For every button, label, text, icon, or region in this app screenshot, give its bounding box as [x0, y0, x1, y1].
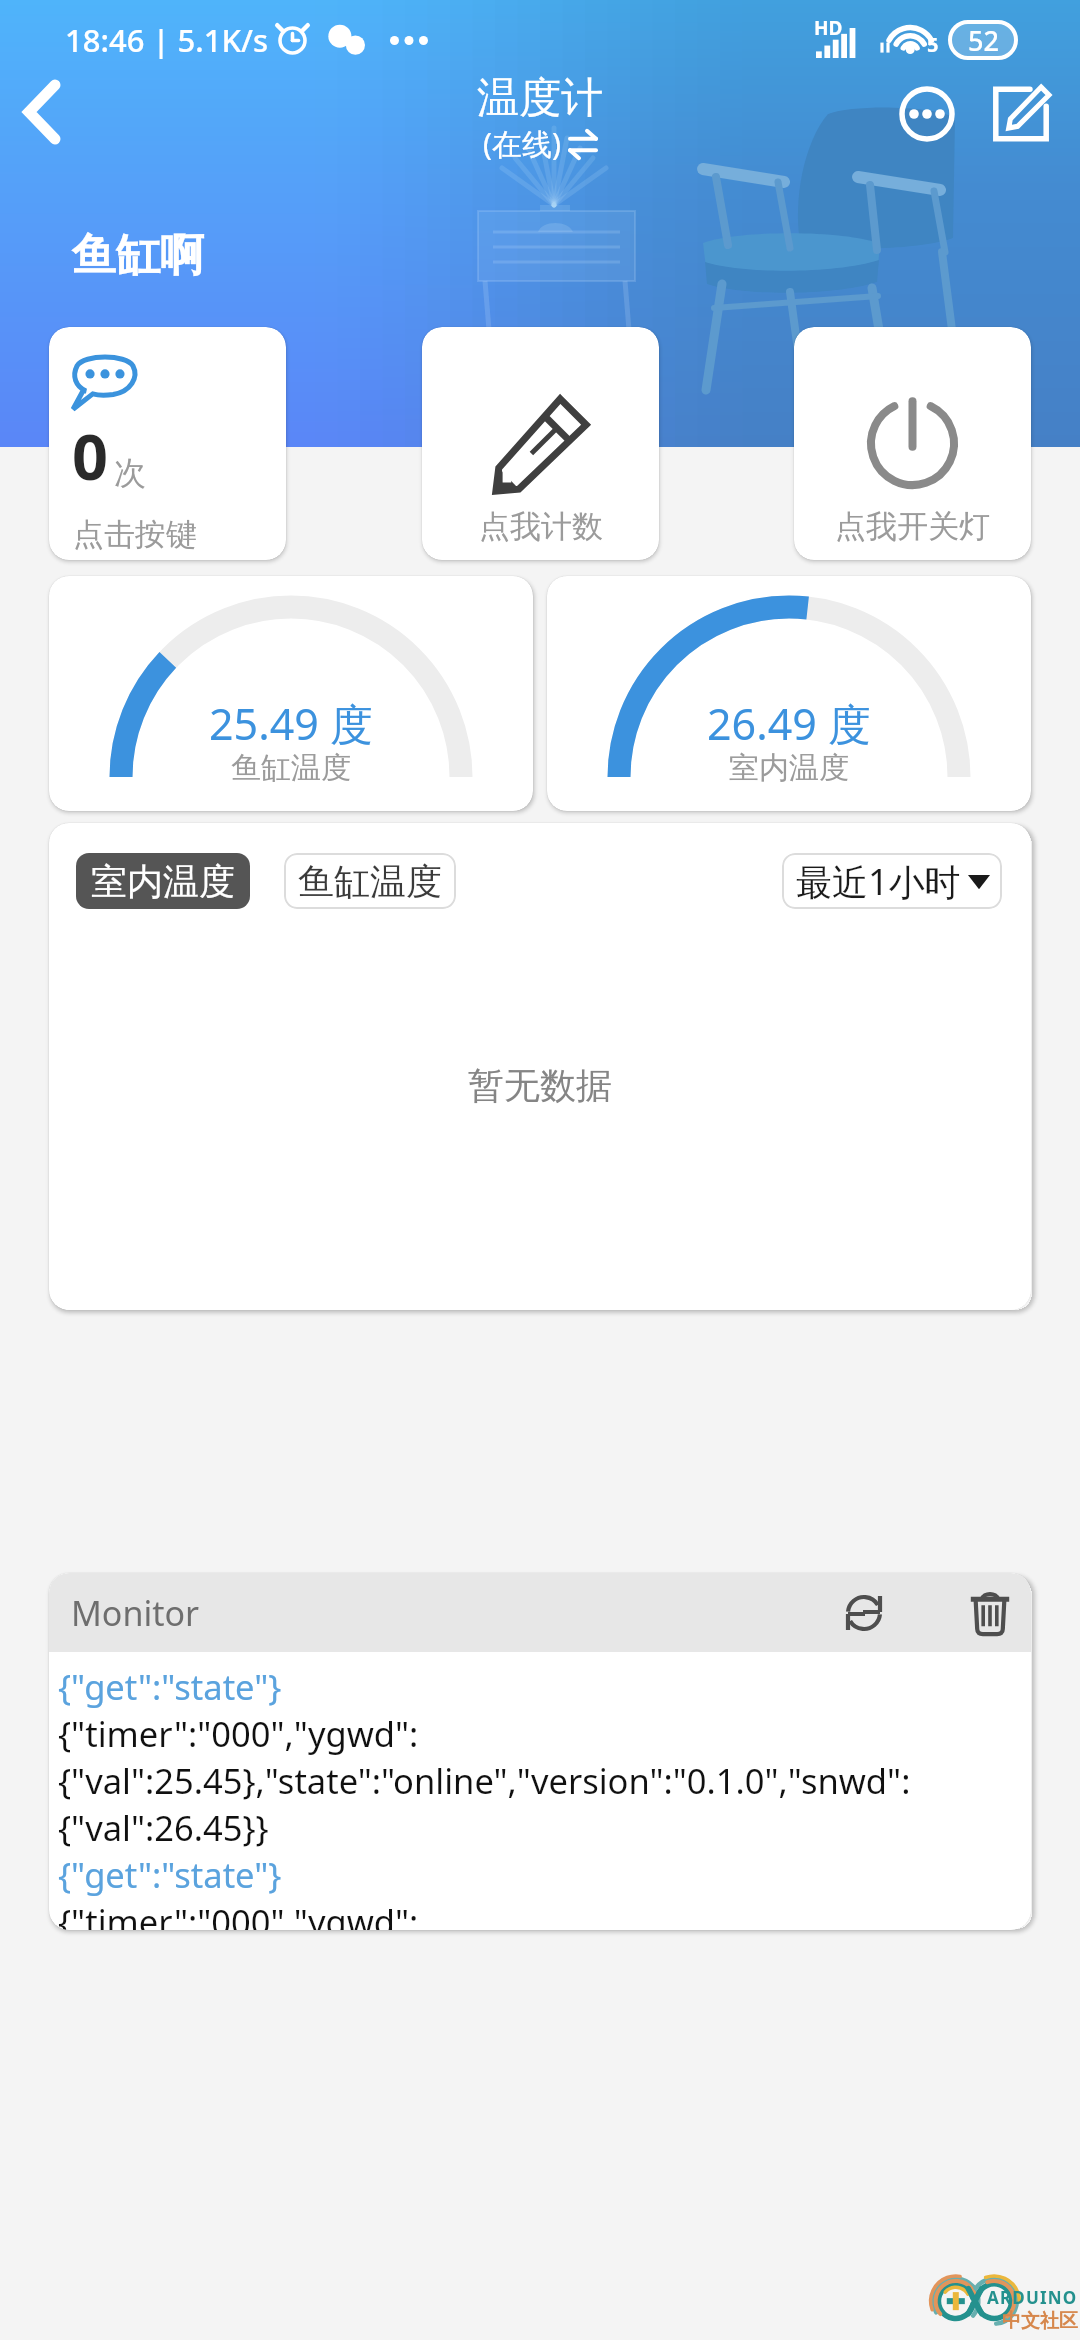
button[interactable]: 最近1小时 — [782, 853, 1002, 909]
button[interactable]: More options — [880, 67, 974, 161]
button[interactable]: Clear — [957, 1580, 1023, 1646]
staticText: HD — [814, 15, 843, 41]
staticText: 52 — [968, 22, 999, 58]
staticText: 鱼缸啊 — [72, 228, 204, 283]
staticText: 鱼缸温度 — [298, 859, 442, 904]
staticText: Monitor — [71, 1590, 200, 1636]
staticText: {"get":"state"} — [58, 1663, 282, 1710]
staticText: 室内温度 — [729, 749, 849, 787]
staticText: 暂无数据 — [468, 1063, 612, 1108]
button[interactable]: 26.49 度 — [547, 576, 1031, 811]
button[interactable]: Back — [0, 64, 90, 160]
staticText: {"val":26.45}} — [58, 1804, 269, 1851]
button[interactable]: Edit — [974, 67, 1068, 161]
staticText: 点我计数 — [479, 507, 603, 546]
button[interactable]: 室内温度 — [76, 853, 250, 909]
staticText: {"timer":"000","ygwd": — [58, 1710, 419, 1757]
staticText: 18:46 | 5.1K/s — [65, 19, 269, 61]
staticText: {"val":25.45},"state":"online","version"… — [58, 1757, 911, 1804]
button[interactable]: 0 — [49, 327, 286, 560]
staticText: 次 — [114, 453, 146, 493]
button[interactable]: Refresh — [831, 1580, 897, 1646]
staticText: {"timer":"000","ygwd": — [58, 1898, 419, 1930]
staticText: 点击按键 — [73, 515, 197, 554]
staticText: 中文社区 — [1002, 2309, 1078, 2333]
staticText: 5 — [927, 31, 939, 58]
staticText: 点我开关灯 — [835, 507, 990, 546]
staticText: 25.49 度 — [209, 694, 374, 753]
staticText: 0 — [72, 413, 109, 499]
staticText: (在线) — [483, 123, 561, 164]
button[interactable]: 点我开关灯 — [794, 327, 1031, 560]
button[interactable]: 25.49 度 — [49, 576, 533, 811]
staticText: 最近1小时 — [796, 857, 961, 906]
staticText: 温度计 — [477, 72, 603, 125]
staticText: {"get":"state"} — [58, 1851, 282, 1898]
staticText: ARDUINO — [987, 2286, 1078, 2309]
button[interactable]: 鱼缸温度 — [284, 853, 456, 909]
staticText: 鱼缸温度 — [231, 749, 351, 787]
staticText: 室内温度 — [91, 859, 235, 904]
staticText: 26.49 度 — [707, 694, 872, 753]
button[interactable]: 点我计数 — [422, 327, 659, 560]
